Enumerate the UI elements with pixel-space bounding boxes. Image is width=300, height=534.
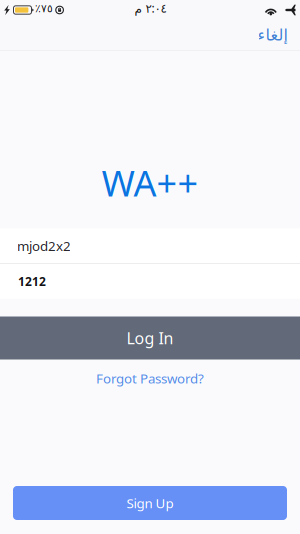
staticText: 1212 [18, 273, 46, 289]
staticText: Sign Up [126, 494, 173, 512]
button[interactable]: إلغاء [244, 20, 300, 50]
button[interactable]: Log In [0, 316, 300, 359]
button[interactable]: Forgot Password? [80, 365, 220, 391]
staticText: WA++ [101, 159, 198, 206]
staticText: Forgot Password? [96, 369, 204, 387]
button[interactable]: Sign Up [13, 486, 287, 520]
staticText: ٢:٠٤ م [134, 0, 166, 16]
staticText: إلغاء [257, 26, 287, 44]
staticText: mjod2x2 [17, 237, 71, 255]
button[interactable]: mjod2x2 [0, 228, 300, 263]
button[interactable]: 1212 [0, 264, 300, 298]
staticText: Log In [126, 327, 173, 349]
staticText: ٪٧٥ [35, 2, 53, 14]
